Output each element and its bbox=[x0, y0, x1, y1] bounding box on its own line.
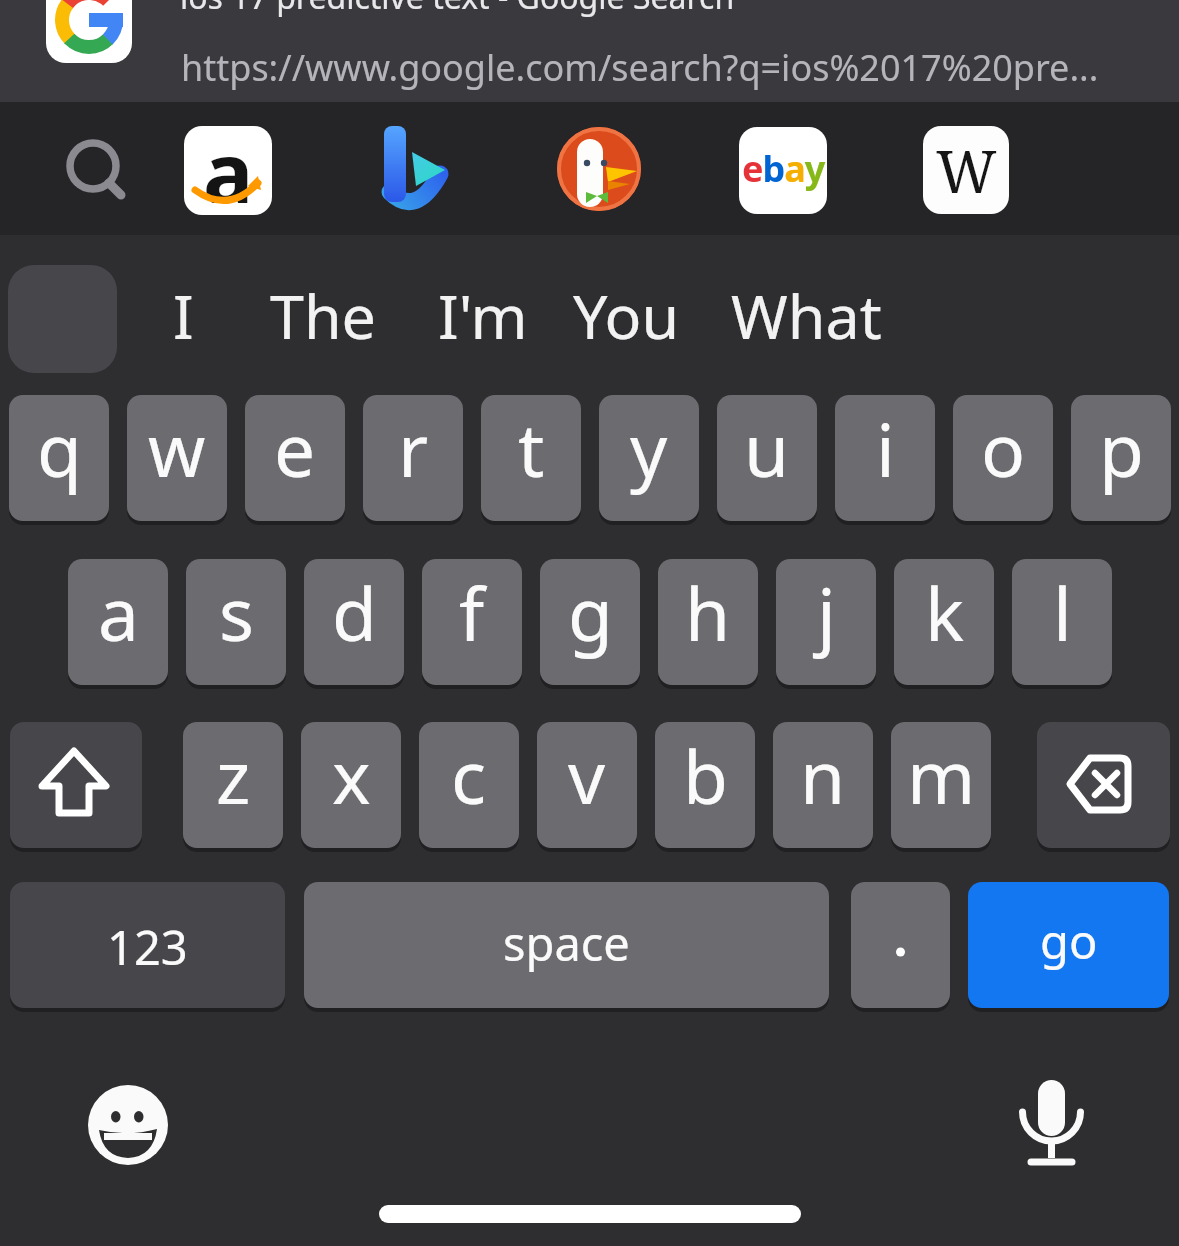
staticText: a bbox=[98, 563, 139, 662]
staticText: k bbox=[925, 563, 964, 662]
button[interactable]: g bbox=[540, 559, 640, 685]
staticText: h bbox=[685, 563, 731, 662]
staticText: 123 bbox=[107, 915, 188, 979]
button[interactable] bbox=[10, 722, 142, 848]
staticText: t bbox=[518, 399, 545, 498]
button[interactable] bbox=[8, 265, 117, 373]
staticText: a bbox=[203, 126, 254, 203]
button[interactable]: I'm bbox=[393, 274, 573, 344]
button[interactable]: m bbox=[891, 722, 991, 848]
staticText: https://www.google.com/search?q=ios%2017… bbox=[181, 43, 1099, 92]
staticText: g bbox=[568, 563, 613, 662]
button[interactable]: e bbox=[245, 395, 345, 521]
button[interactable]: x bbox=[301, 722, 401, 848]
button[interactable]: l bbox=[1012, 559, 1112, 685]
button[interactable]: r bbox=[363, 395, 463, 521]
button[interactable]: w bbox=[127, 395, 227, 521]
button[interactable] bbox=[1014, 1064, 1090, 1174]
staticText: b bbox=[683, 726, 728, 825]
button[interactable]: What bbox=[716, 274, 896, 344]
button[interactable] bbox=[360, 110, 480, 230]
staticText: u bbox=[744, 399, 790, 498]
button[interactable]: q bbox=[9, 395, 109, 521]
staticText: f bbox=[459, 563, 485, 662]
staticText: ebay bbox=[742, 144, 825, 193]
button[interactable]: s bbox=[186, 559, 286, 685]
staticText: v bbox=[568, 726, 606, 825]
button[interactable]: The bbox=[233, 274, 413, 344]
staticText: space bbox=[503, 911, 630, 975]
staticText: go bbox=[1040, 909, 1098, 973]
staticText: l bbox=[1053, 563, 1072, 662]
staticText: n bbox=[800, 726, 846, 825]
button[interactable]: z bbox=[183, 722, 283, 848]
button[interactable]: ebay bbox=[739, 127, 827, 214]
button[interactable]: u bbox=[717, 395, 817, 521]
staticText: x bbox=[332, 726, 371, 825]
staticText: y bbox=[630, 399, 668, 498]
staticText: z bbox=[216, 726, 251, 825]
button[interactable]: I bbox=[93, 274, 273, 344]
staticText: q bbox=[37, 399, 82, 498]
button[interactable]: c bbox=[419, 722, 519, 848]
button[interactable]: v bbox=[537, 722, 637, 848]
button[interactable] bbox=[46, 0, 132, 63]
staticText: d bbox=[332, 563, 377, 662]
button[interactable]: h bbox=[658, 559, 758, 685]
staticText: The bbox=[270, 274, 377, 344]
staticText: w bbox=[148, 399, 206, 498]
button[interactable] bbox=[1037, 722, 1170, 848]
staticText: W bbox=[936, 131, 997, 210]
button[interactable]: y bbox=[599, 395, 699, 521]
staticText: s bbox=[219, 563, 254, 662]
staticText: What bbox=[731, 274, 882, 344]
button[interactable]: k bbox=[894, 559, 994, 685]
staticText: I'm bbox=[438, 274, 528, 344]
button[interactable] bbox=[83, 1081, 173, 1171]
button[interactable] bbox=[553, 123, 645, 215]
staticText: p bbox=[1099, 399, 1144, 498]
button[interactable] bbox=[62, 137, 134, 209]
button[interactable]: f bbox=[422, 559, 522, 685]
button[interactable]: p bbox=[1071, 395, 1171, 521]
button[interactable]: go bbox=[968, 882, 1169, 1008]
button[interactable]: o bbox=[953, 395, 1053, 521]
button[interactable]: b bbox=[655, 722, 755, 848]
button[interactable]: d bbox=[304, 559, 404, 685]
staticText: You bbox=[573, 274, 680, 344]
staticText: ios 17 predictive text - Google Search bbox=[180, 0, 735, 19]
button[interactable]: j bbox=[776, 559, 876, 685]
staticText: r bbox=[398, 399, 429, 498]
button[interactable]: W bbox=[923, 126, 1009, 214]
staticText: j bbox=[817, 563, 836, 662]
button[interactable]: n bbox=[773, 722, 873, 848]
button[interactable]: You bbox=[536, 274, 716, 344]
staticText: e bbox=[274, 399, 316, 498]
staticText: o bbox=[981, 399, 1026, 498]
button[interactable]: t bbox=[481, 395, 581, 521]
button[interactable]: a bbox=[68, 559, 168, 685]
staticText: c bbox=[451, 726, 487, 825]
button[interactable]: i bbox=[835, 395, 935, 521]
staticText: m bbox=[907, 726, 976, 825]
staticText: I bbox=[173, 274, 194, 344]
staticText: i bbox=[876, 399, 895, 498]
button[interactable]: a bbox=[184, 126, 272, 215]
button[interactable]: space bbox=[304, 882, 829, 1008]
button[interactable]: 123 bbox=[10, 882, 285, 1008]
button[interactable] bbox=[851, 882, 950, 1008]
